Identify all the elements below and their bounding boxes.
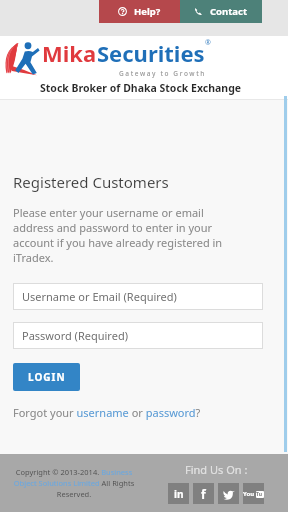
staticText: You — [243, 490, 255, 498]
staticText: Find Us On : — [185, 462, 248, 477]
staticText: Help? — [134, 5, 161, 18]
button[interactable]: Help? — [99, 0, 180, 23]
staticText: LOGIN — [28, 370, 66, 384]
staticText: Tube — [256, 491, 264, 498]
staticText: f — [201, 486, 206, 502]
staticText: in — [174, 487, 184, 501]
button[interactable]: Username or Email (Required) — [13, 283, 263, 310]
button[interactable]: Contact — [180, 0, 262, 23]
staticText: Username or Email (Required) — [22, 289, 177, 304]
staticText: Copyright © 2013-2014. Business Object S… — [4, 467, 144, 499]
button[interactable]: Forgot your username or password? — [13, 405, 201, 420]
button[interactable]: LinkedIn — [168, 483, 189, 504]
staticText: Mika — [42, 38, 97, 68]
staticText: ® — [205, 38, 211, 48]
button[interactable]: Facebook — [193, 483, 214, 504]
staticText: Registered Customers — [13, 172, 169, 192]
staticText: Securities — [97, 38, 205, 68]
staticText: Password (Required) — [22, 328, 128, 343]
button[interactable]: LOGIN — [13, 363, 80, 391]
staticText: Forgot your username or password? — [13, 405, 201, 420]
staticText: Stock Broker of Dhaka Stock Exchange — [40, 81, 242, 95]
staticText: Please enter your username or email addr… — [13, 205, 223, 265]
button[interactable]: YouTube — [243, 483, 264, 504]
button[interactable]: Twitter — [218, 483, 239, 504]
staticText: Gateway to Growth — [119, 69, 206, 78]
staticText: Contact — [210, 5, 248, 18]
button[interactable]: Password (Required) — [13, 322, 263, 349]
